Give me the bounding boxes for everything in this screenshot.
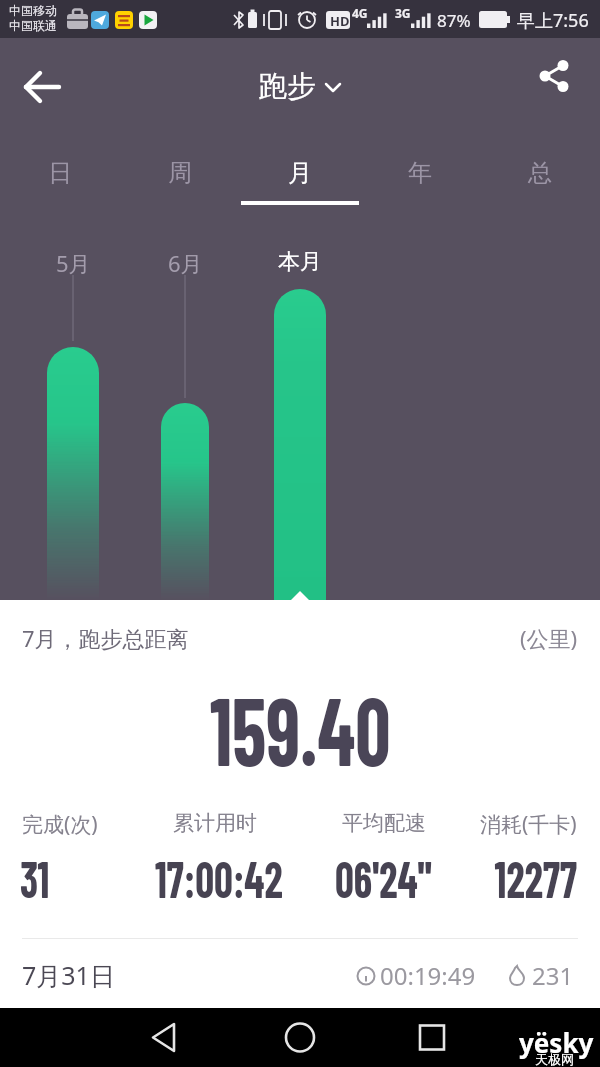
staticText: 3G	[395, 5, 411, 21]
staticText: yësky	[519, 1025, 594, 1060]
staticText: 7月31日	[22, 958, 115, 992]
staticText: 年	[408, 158, 432, 188]
staticText: 06'24''	[335, 846, 432, 908]
button[interactable]	[510, 38, 600, 135]
staticText: HD	[330, 12, 350, 30]
staticText: 6月	[168, 248, 203, 278]
button[interactable]: 年	[360, 135, 480, 210]
staticText: 累计用时	[173, 810, 257, 836]
staticText: 月	[288, 158, 312, 188]
button[interactable]	[402, 1008, 462, 1067]
staticText: 17:00:42	[155, 846, 283, 908]
staticText: 早上7:56	[517, 8, 589, 33]
staticText: 天极网	[535, 1051, 574, 1067]
staticText: 消耗(千卡)	[480, 810, 577, 839]
button[interactable]: 7月31日	[0, 955, 600, 995]
staticText: 跑步	[258, 68, 316, 105]
staticText: 31	[20, 846, 50, 908]
button[interactable]	[135, 1008, 195, 1067]
button[interactable]	[0, 38, 84, 135]
staticText: 7月，跑步总距离	[22, 623, 189, 653]
staticText: 87%	[437, 9, 471, 32]
staticText: 12277	[495, 846, 577, 908]
staticText: 总	[528, 158, 552, 188]
button[interactable]: 月	[240, 135, 360, 210]
staticText: 00:19:49	[380, 959, 476, 992]
staticText: 日	[48, 158, 72, 188]
button[interactable]: 周	[120, 135, 240, 210]
staticText: 中国移动	[9, 3, 57, 18]
staticText: 中国联通	[9, 18, 57, 33]
button[interactable]: 日	[0, 135, 120, 210]
staticText: 159.40	[210, 671, 391, 785]
button[interactable]: 总	[480, 135, 600, 210]
staticText: 5月	[56, 248, 91, 278]
button[interactable]: 跑步	[258, 68, 342, 105]
staticText: (公里)	[520, 623, 578, 653]
staticText: 231	[532, 959, 574, 992]
button[interactable]	[270, 1008, 330, 1067]
staticText: 本月	[278, 248, 322, 276]
staticText: 4G	[352, 5, 368, 21]
staticText: 完成(次)	[22, 810, 98, 839]
staticText: 平均配速	[342, 810, 426, 836]
staticText: 周	[168, 158, 192, 188]
